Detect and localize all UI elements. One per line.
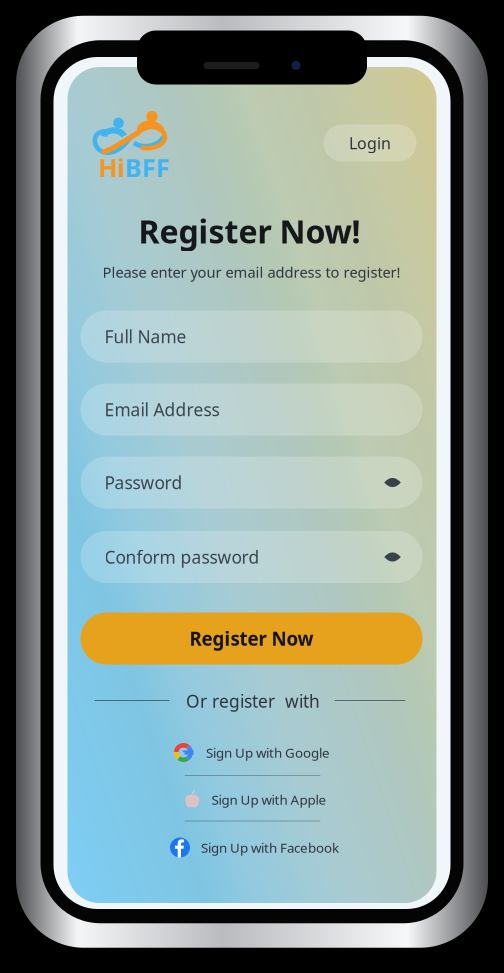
staticText: Password [104,471,182,494]
button[interactable]: Sign Up with Apple [183,783,326,815]
staticText: Hi [98,151,125,184]
button[interactable]: Email Address [80,383,422,435]
staticText: Login [349,132,391,154]
staticText: Please enter your email address to regis… [102,262,400,282]
staticText: Sign Up with Google [206,744,330,761]
button[interactable]: Full Name [80,310,422,362]
staticText: Register Now [189,626,313,651]
button[interactable]: Sign Up with Google [174,736,330,768]
button[interactable]: Login [323,124,416,161]
staticText: Sign Up with Facebook [201,839,339,856]
button[interactable]: Sign Up with Facebook [170,831,339,863]
button[interactable]: Register Now [80,612,422,664]
staticText: Full Name [104,325,186,348]
staticText: Email Address [104,398,219,421]
staticText: Conform password [104,545,259,568]
staticText: BFF [125,151,170,184]
button[interactable]: Conform password [80,531,422,583]
staticText: Or register with [186,689,320,712]
staticText: Register Now! [138,210,360,252]
button[interactable]: Password [80,456,422,508]
staticText: Sign Up with Apple [211,791,326,808]
